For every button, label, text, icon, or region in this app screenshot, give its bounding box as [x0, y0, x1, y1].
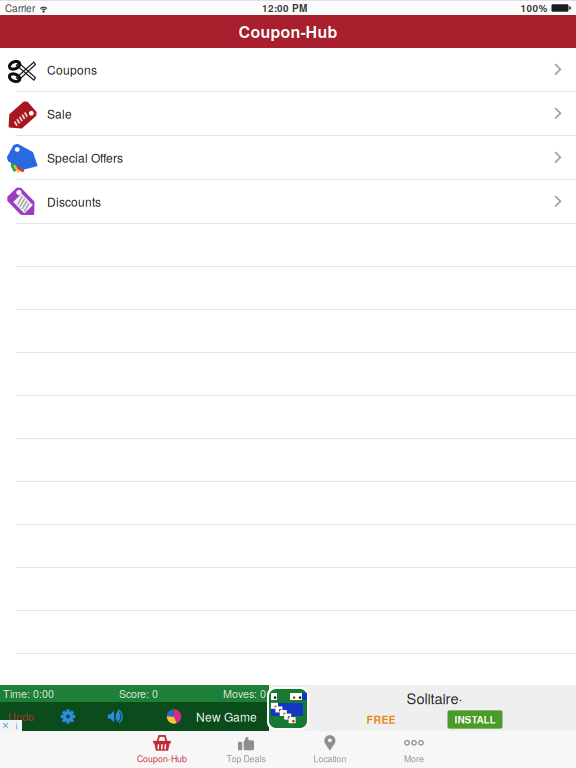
- staticText: Moves: 0: [223, 686, 266, 701]
- staticText: Coupon-Hub: [137, 752, 187, 765]
- staticText: ✕: [1, 720, 9, 731]
- staticText: Carrier: [5, 1, 35, 15]
- staticText: i: [15, 719, 17, 732]
- staticText: FREE: [366, 712, 395, 727]
- staticText: Undo: [8, 709, 34, 724]
- button[interactable]: Discounts: [0, 180, 576, 224]
- button[interactable]: INSTALL: [447, 710, 502, 729]
- staticText: Top Deals: [226, 752, 265, 765]
- staticText: Coupon-Hub: [238, 20, 337, 43]
- button[interactable]: Special Offers: [0, 136, 576, 180]
- button[interactable]: Top Deals: [204, 731, 288, 768]
- button[interactable]: Coupons: [0, 48, 576, 92]
- button[interactable]: Coupon-Hub: [120, 731, 204, 768]
- staticText: Sale: [47, 105, 72, 122]
- staticText: INSTALL: [454, 712, 495, 727]
- staticText: Location: [313, 752, 346, 765]
- staticText: 12:00 PM: [262, 1, 307, 15]
- button[interactable]: Sale: [0, 92, 576, 136]
- staticText: Discounts: [47, 193, 101, 210]
- staticText: 100%: [520, 1, 547, 15]
- button[interactable]: Close ad: [0, 720, 11, 731]
- staticText: Special Offers: [47, 149, 123, 166]
- staticText: Solitaire·: [406, 687, 462, 708]
- button[interactable]: Ad info: [11, 720, 22, 731]
- staticText: Time: 0:00: [3, 686, 54, 701]
- staticText: More: [404, 752, 424, 765]
- staticText: New Game: [196, 708, 257, 725]
- button[interactable]: More: [372, 731, 456, 768]
- staticText: Score: 0: [119, 686, 158, 701]
- button[interactable]: Location: [288, 731, 372, 768]
- staticText: Coupons: [47, 61, 97, 78]
